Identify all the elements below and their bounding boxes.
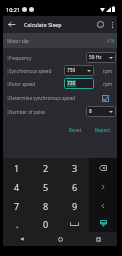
- staticText: 5: [43, 181, 49, 193]
- button[interactable]: 3: [60, 158, 89, 177]
- button[interactable]: del: [89, 158, 117, 177]
- button[interactable]: Space: [60, 215, 89, 232]
- staticText: 0: [43, 218, 49, 230]
- button[interactable]: Help: [94, 16, 107, 33]
- button[interactable]: prev: [89, 196, 117, 215]
- button[interactable]: Reset: [66, 125, 85, 135]
- staticText: 750: [67, 67, 76, 74]
- staticText: Frequency: [9, 55, 32, 61]
- staticText: Rotor speed: [9, 81, 36, 87]
- button[interactable]: More options: [107, 16, 117, 33]
- button[interactable]: 9: [60, 196, 89, 215]
- staticText: 9: [72, 200, 78, 212]
- staticText: 2: [43, 162, 49, 174]
- staticText: 720: [67, 80, 76, 87]
- staticText: 7: [14, 200, 20, 212]
- staticText: Calculate Sleep: [24, 21, 62, 28]
- button[interactable]: 6: [60, 177, 89, 196]
- staticText: rpm: [103, 81, 113, 87]
- staticText: .: [16, 218, 19, 230]
- staticText: rpm: [103, 68, 113, 74]
- staticText: 8: [89, 108, 92, 115]
- button[interactable]: Navigate up: [3, 16, 19, 33]
- staticText: 1: [14, 162, 20, 174]
- button[interactable]: 750: [64, 65, 94, 76]
- staticText: Report: [95, 127, 110, 133]
- button[interactable]: 0: [31, 215, 60, 232]
- button[interactable]: 720: [64, 78, 94, 89]
- staticText: 6: [72, 181, 78, 193]
- staticText: 8: [43, 200, 49, 212]
- button[interactable]: 1: [3, 158, 31, 177]
- staticText: 4: [14, 181, 20, 193]
- button[interactable]: Determine synchronous speed: [101, 94, 109, 102]
- staticText: Synchronous speed: [9, 68, 52, 74]
- button[interactable]: 50 Hz: [86, 52, 116, 63]
- staticText: 50 Hz: [89, 54, 102, 61]
- button[interactable]: Recent apps: [79, 232, 117, 246]
- button[interactable]: 4: [3, 177, 31, 196]
- button[interactable]: 7: [3, 196, 31, 215]
- staticText: Motor slip: [7, 38, 29, 44]
- other: Space: [70, 222, 79, 226]
- button[interactable]: 8: [86, 106, 116, 117]
- button[interactable]: enter: [89, 215, 117, 232]
- staticText: Number of poles: [9, 109, 46, 115]
- staticText: 10:21: [6, 6, 21, 13]
- staticText: 3: [72, 162, 78, 174]
- staticText: Determine synchronous speed: [9, 95, 76, 101]
- button[interactable]: Home: [41, 232, 79, 246]
- button[interactable]: 5: [31, 177, 60, 196]
- button[interactable]: .: [3, 215, 31, 232]
- staticText: 4 %: [107, 38, 115, 44]
- staticText: Reset: [69, 127, 82, 133]
- button[interactable]: Back: [3, 232, 41, 246]
- button[interactable]: Report: [92, 125, 113, 135]
- button[interactable]: 8: [31, 196, 60, 215]
- button[interactable]: 2: [31, 158, 60, 177]
- button[interactable]: next: [89, 177, 117, 196]
